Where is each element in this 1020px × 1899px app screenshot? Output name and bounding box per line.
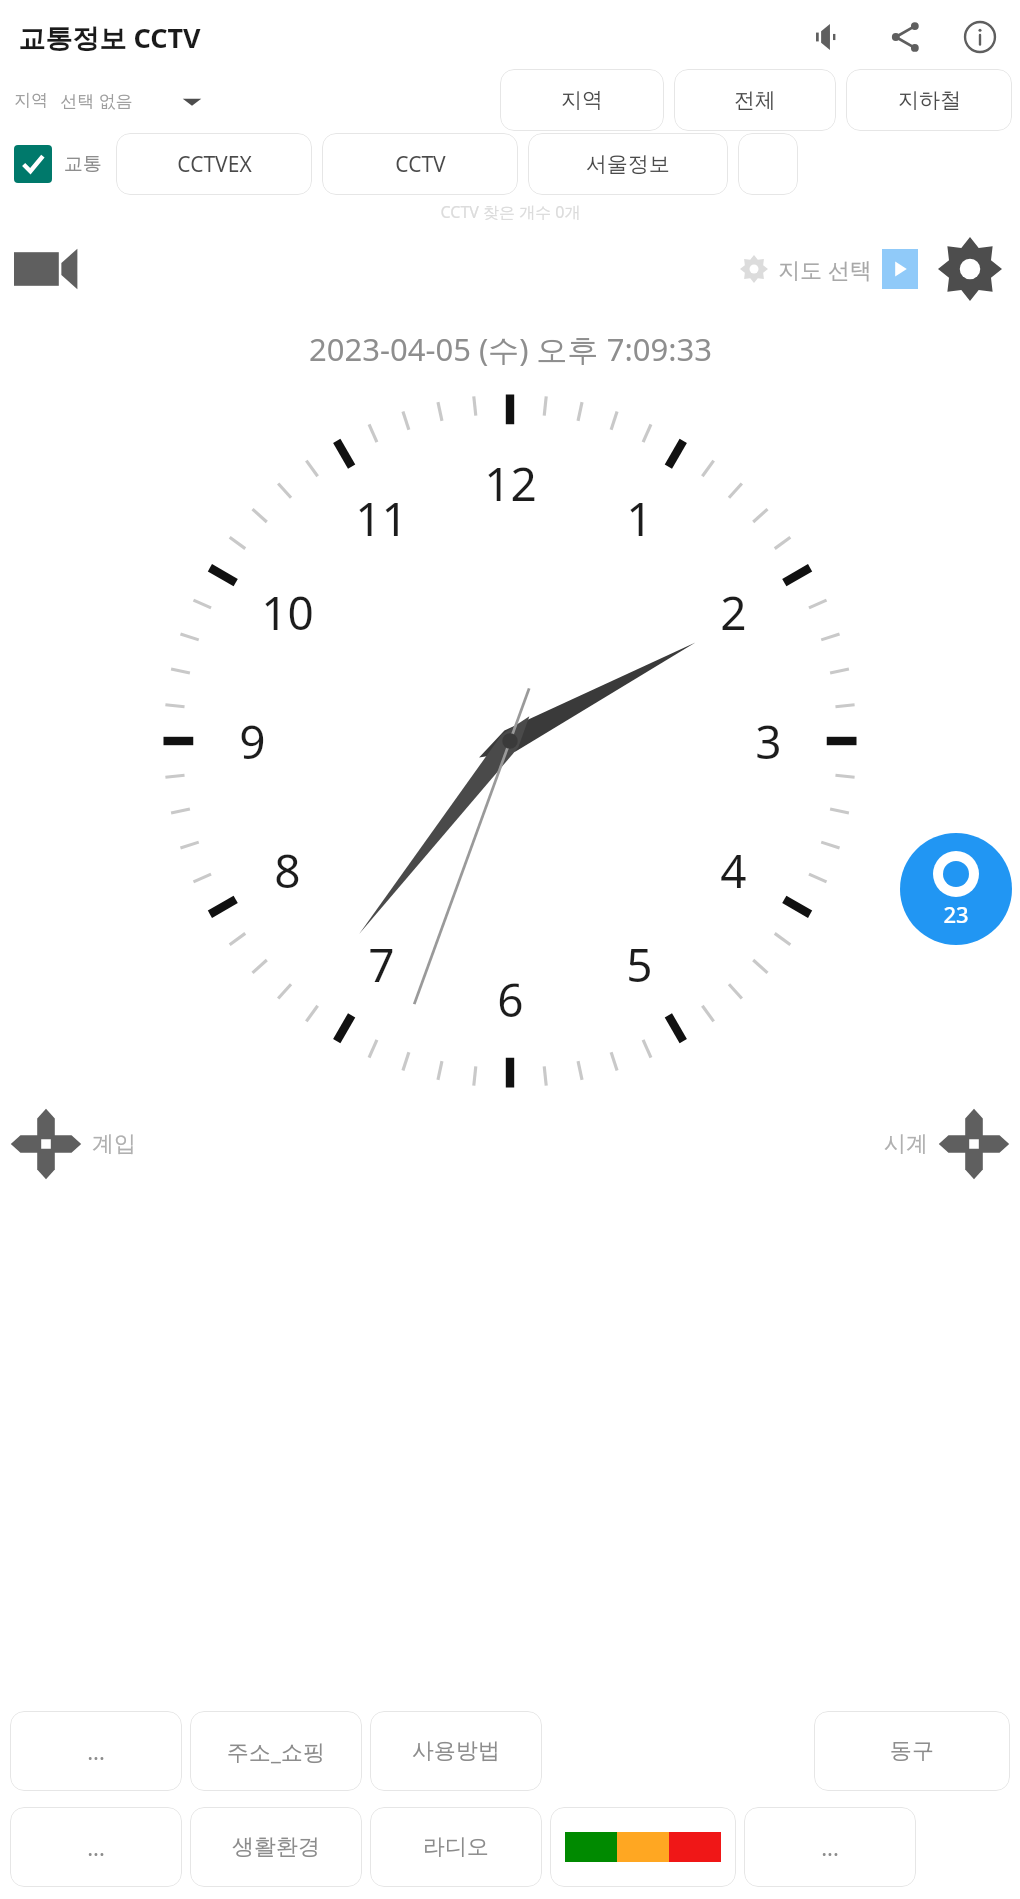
staticText: 선택 없음 [60, 89, 133, 112]
button[interactable]: Camera [14, 239, 90, 299]
button[interactable]: ... [10, 1807, 182, 1887]
staticText: CCTVEX [177, 150, 252, 179]
button[interactable]: 지역 [14, 89, 203, 112]
staticText: ... [821, 1832, 839, 1862]
staticText: 4 [720, 839, 747, 902]
button[interactable]: Settings [934, 233, 1006, 305]
button[interactable]: Refresh [900, 833, 1012, 945]
button[interactable]: Traffic level [550, 1807, 736, 1887]
staticText: ... [87, 1736, 105, 1766]
button[interactable]: Info [954, 11, 1006, 63]
button[interactable]: 서울정보 [528, 133, 728, 195]
button[interactable]: CCTV [322, 133, 518, 195]
staticText: 지역 [14, 90, 48, 111]
button[interactable]: 계입 [6, 1104, 136, 1184]
staticText: 12 [484, 452, 537, 515]
button[interactable]: 지하철 [846, 69, 1012, 131]
staticText: 1 [626, 487, 653, 550]
button[interactable]: 시계 [884, 1104, 1014, 1184]
staticText: 교통정보 CCTV [18, 19, 201, 56]
staticText: 11 [355, 487, 408, 550]
staticText: CCTV [395, 150, 446, 179]
button[interactable]: 라디오 [370, 1807, 542, 1887]
staticText: 계입 [92, 1130, 136, 1158]
staticText: 8 [274, 839, 301, 902]
button[interactable]: 교통 [14, 145, 102, 183]
button[interactable]: 사용방법 [370, 1711, 542, 1791]
staticText: CCTV 찾은 개수 0개 [440, 201, 581, 223]
button[interactable]: Volume [806, 11, 858, 63]
staticText: 지역 [561, 87, 603, 113]
staticText: 사용방법 [412, 1737, 500, 1765]
staticText: 3 [755, 710, 782, 773]
staticText: 생활환경 [232, 1833, 320, 1861]
staticText: 10 [261, 581, 314, 644]
button[interactable]: 전체 [674, 69, 836, 131]
button[interactable]: 동구 [814, 1711, 1010, 1791]
staticText: 시계 [884, 1130, 928, 1158]
button[interactable]: 지역 [500, 69, 664, 131]
staticText: 주소_쇼핑 [227, 1736, 325, 1766]
staticText: 교통 [64, 152, 102, 176]
button[interactable]: CCTVEX [116, 133, 312, 195]
staticText: 7 [368, 933, 395, 996]
staticText: 동구 [890, 1737, 934, 1765]
button[interactable]: Share [880, 11, 932, 63]
staticText: 23 [943, 899, 969, 929]
staticText: 전체 [734, 87, 776, 113]
button[interactable]: ... [744, 1807, 916, 1887]
staticText: 지하철 [898, 87, 961, 113]
button[interactable]: 주소_쇼핑 [190, 1711, 362, 1791]
button[interactable]: 지도 선택 [740, 249, 918, 289]
staticText: 9 [239, 710, 266, 773]
button[interactable]: ... [10, 1711, 182, 1791]
staticText: 2023-04-05 (수) 오후 7:09:33 [309, 328, 712, 370]
staticText: 5 [626, 933, 653, 996]
staticText: 2 [720, 581, 747, 644]
button[interactable] [738, 133, 798, 195]
staticText: ... [87, 1832, 105, 1862]
staticText: 라디오 [423, 1833, 489, 1861]
staticText: 서울정보 [586, 151, 670, 177]
staticText: 6 [497, 968, 524, 1031]
button[interactable]: 생활환경 [190, 1807, 362, 1887]
staticText: 지도 선택 [778, 254, 872, 284]
